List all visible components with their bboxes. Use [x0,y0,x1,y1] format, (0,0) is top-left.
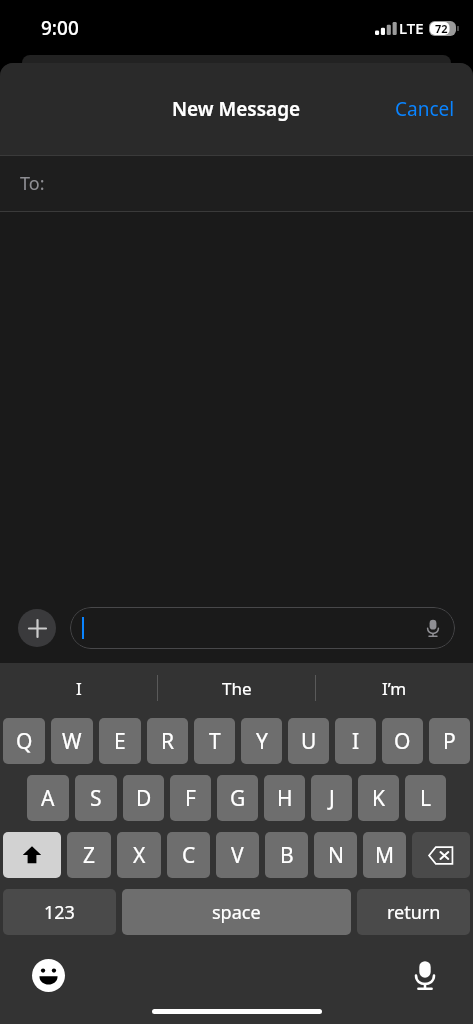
staticText: I’m [382,677,407,700]
staticText: To: [20,171,45,196]
button[interactable]: S [75,775,117,821]
button[interactable]: Shift [3,832,61,878]
staticText: 123 [44,900,75,925]
button[interactable]: C [167,832,210,878]
button[interactable]: F [170,775,211,821]
button[interactable]: N [314,832,357,878]
button[interactable]: G [217,775,258,821]
button[interactable]: W [51,718,93,764]
staticText: N [328,841,344,870]
button[interactable]: Z [67,832,111,878]
staticText: G [230,784,246,813]
staticText: 72 [435,21,448,36]
button[interactable]: X [117,832,161,878]
button[interactable]: return [357,889,470,935]
button[interactable]: M [363,832,406,878]
button[interactable]: O [382,718,423,764]
staticText: L [420,784,432,813]
staticText: H [277,784,293,813]
staticText: Q [16,727,33,756]
button[interactable]: Dictate [70,607,455,649]
staticText: return [387,900,441,925]
staticText: Cancel [395,96,455,122]
staticText: E [114,727,126,756]
staticText: New Message [172,96,301,122]
button[interactable]: K [358,775,399,821]
staticText: I [76,677,82,700]
staticText: U [301,727,317,756]
staticText: W [62,727,82,756]
button[interactable]: U [288,718,329,764]
button[interactable]: Y [241,718,282,764]
button[interactable]: Dictation [403,953,447,997]
staticText: Z [83,841,96,870]
button[interactable]: I’m [316,663,473,713]
button[interactable]: Add attachment [18,609,56,647]
staticText: V [231,841,244,870]
staticText: D [136,784,152,813]
staticText: P [443,727,456,756]
button[interactable]: D [123,775,164,821]
button[interactable]: Q [3,718,45,764]
staticText: space [212,900,261,925]
staticText: The [222,677,252,700]
staticText: LTE [399,18,424,38]
staticText: O [394,727,411,756]
button[interactable]: Cancel [377,86,473,132]
button[interactable]: V [216,832,259,878]
staticText: Y [256,727,268,756]
staticText: B [280,841,294,870]
staticText: 9:00 [41,15,79,41]
button[interactable]: E [99,718,141,764]
staticText: S [90,784,102,813]
button[interactable]: space [122,889,351,935]
button[interactable]: I [0,663,157,713]
button[interactable]: To: [0,156,473,211]
button[interactable]: A [27,775,69,821]
button[interactable]: B [265,832,308,878]
button[interactable]: 123 [3,889,116,935]
button[interactable]: I [335,718,376,764]
staticText: C [182,841,196,870]
button[interactable]: T [194,718,235,764]
staticText: F [185,784,196,813]
staticText: T [209,727,221,756]
staticText: I [352,727,360,756]
staticText: K [372,784,385,813]
button[interactable]: P [429,718,470,764]
button[interactable]: L [405,775,446,821]
button[interactable]: The [158,663,315,713]
button[interactable]: Backspace [412,832,470,878]
staticText: R [161,727,175,756]
staticText: X [133,841,146,870]
button[interactable]: J [311,775,352,821]
button[interactable]: Emoji [26,953,70,997]
button[interactable]: H [264,775,305,821]
button[interactable]: R [147,718,188,764]
staticText: M [375,841,395,870]
other: Dictate [424,619,442,637]
staticText: J [329,784,335,813]
staticText: A [41,784,55,813]
